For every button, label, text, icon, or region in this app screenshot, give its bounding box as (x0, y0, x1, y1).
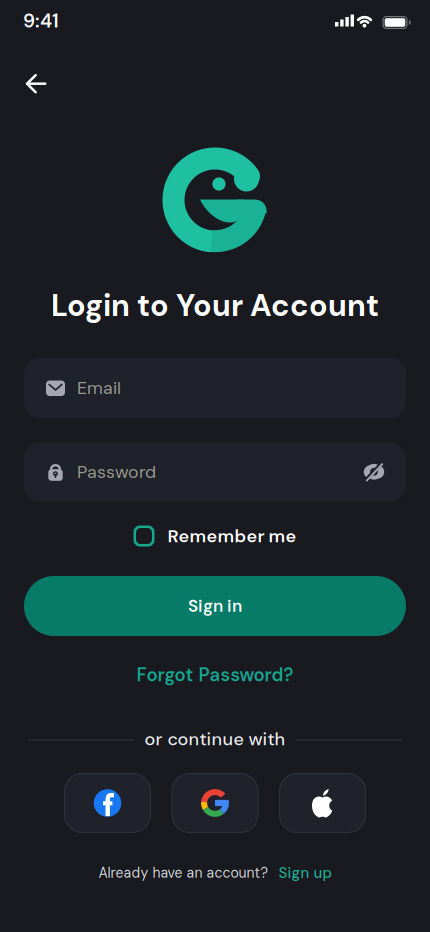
button[interactable]: Sign in (24, 576, 406, 636)
staticText: or continue with (144, 727, 285, 751)
staticText: Sign up (278, 863, 331, 883)
secureTextField[interactable]: Password (77, 460, 364, 483)
staticText: 9:41 (23, 9, 59, 33)
button[interactable]: Continue with Google (171, 773, 258, 833)
staticText: Email (77, 376, 121, 399)
button[interactable]: Back (15, 71, 59, 97)
button[interactable]: Continue with Facebook (64, 773, 151, 833)
staticText: Password (77, 460, 156, 483)
staticText: Login to Your Account (51, 286, 379, 325)
button[interactable]: Sign up (278, 863, 331, 883)
button[interactable]: Show password (364, 463, 384, 481)
button[interactable]: Continue with Apple (279, 773, 366, 833)
textField[interactable]: Email (77, 376, 384, 399)
button[interactable]: Forgot Password? (136, 663, 293, 687)
staticText: Sign in (188, 595, 242, 617)
button[interactable]: Remember me (133, 524, 296, 548)
staticText: Forgot Password? (136, 663, 293, 687)
staticText: Remember me (167, 524, 296, 548)
staticText: Already have an account? (98, 864, 268, 882)
